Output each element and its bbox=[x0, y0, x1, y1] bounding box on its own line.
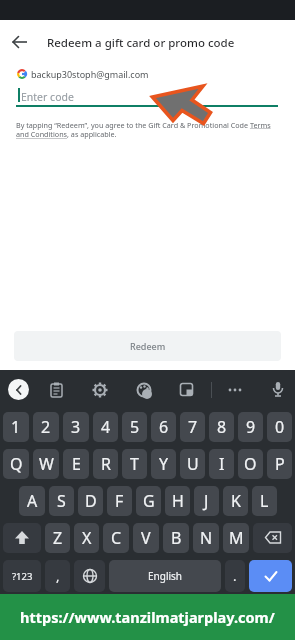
button[interactable]: X bbox=[74, 523, 99, 553]
button[interactable]: W bbox=[33, 449, 59, 479]
button[interactable]: ?123 bbox=[3, 560, 41, 592]
staticText: L bbox=[260, 490, 269, 512]
button[interactable] bbox=[16, 65, 156, 82]
button[interactable]: 8 bbox=[209, 412, 234, 442]
button[interactable] bbox=[267, 379, 289, 401]
button[interactable] bbox=[46, 379, 68, 401]
staticText: K bbox=[231, 490, 241, 512]
staticText: J bbox=[204, 490, 209, 512]
staticText: 7 bbox=[188, 416, 198, 438]
staticText: P bbox=[275, 453, 285, 475]
staticText: 4 bbox=[101, 416, 111, 438]
staticText: English bbox=[148, 569, 183, 583]
button[interactable]: By tapping “Redeem”, you agree to the Gi… bbox=[16, 120, 282, 140]
button[interactable]: 9 bbox=[238, 412, 263, 442]
staticText: X bbox=[82, 527, 92, 549]
staticText: 8 bbox=[217, 416, 227, 438]
button[interactable]: E bbox=[63, 449, 89, 479]
button[interactable]: N bbox=[193, 523, 219, 553]
button[interactable]: C bbox=[103, 523, 129, 553]
staticText: T bbox=[130, 453, 139, 475]
staticText: 2 bbox=[41, 416, 51, 438]
staticText: ?123 bbox=[12, 570, 33, 583]
staticText: , bbox=[56, 567, 60, 585]
button[interactable]: B bbox=[163, 523, 189, 553]
button[interactable]: U bbox=[180, 449, 205, 479]
staticText: 0 bbox=[275, 416, 285, 438]
button[interactable]: 4 bbox=[93, 412, 118, 442]
staticText: M bbox=[229, 527, 244, 549]
staticText: O bbox=[244, 453, 257, 475]
button[interactable]: V bbox=[133, 523, 159, 553]
staticText: Redeem a gift card or promo code bbox=[47, 35, 235, 51]
staticText: C bbox=[111, 527, 122, 549]
staticText: Redeem bbox=[130, 340, 166, 352]
staticText: Q bbox=[10, 453, 23, 475]
button[interactable]: 7 bbox=[180, 412, 205, 442]
button[interactable] bbox=[176, 379, 198, 401]
staticText: . bbox=[233, 567, 237, 585]
staticText: I bbox=[219, 453, 225, 475]
staticText: backup30stoph@gmail.com bbox=[31, 68, 149, 80]
button[interactable]: https://www.tanzilmatjarplay.com/ bbox=[0, 594, 295, 640]
button[interactable]: 1 bbox=[3, 412, 29, 442]
staticText: A bbox=[27, 490, 38, 512]
button[interactable]: Q bbox=[3, 449, 29, 479]
staticText: U bbox=[187, 453, 199, 475]
staticText: S bbox=[57, 490, 66, 512]
button[interactable] bbox=[249, 560, 292, 592]
button[interactable]: Z bbox=[45, 523, 70, 553]
staticText: 1 bbox=[11, 416, 21, 438]
staticText: V bbox=[141, 527, 151, 549]
button[interactable]: D bbox=[78, 486, 103, 516]
button[interactable]: 3 bbox=[63, 412, 89, 442]
button[interactable]: 0 bbox=[267, 412, 292, 442]
staticText: Enter code bbox=[21, 90, 74, 104]
button[interactable]: Redeem bbox=[14, 331, 281, 361]
button[interactable] bbox=[74, 560, 105, 592]
button[interactable]: K bbox=[223, 486, 248, 516]
button[interactable] bbox=[16, 83, 278, 109]
button[interactable]: . bbox=[225, 560, 245, 592]
button[interactable] bbox=[8, 379, 29, 400]
staticText: https://www.tanzilmatjarplay.com/ bbox=[20, 607, 275, 627]
staticText: N bbox=[200, 527, 213, 549]
button[interactable]: English bbox=[109, 560, 221, 592]
button[interactable] bbox=[253, 523, 292, 553]
button[interactable]: 6 bbox=[151, 412, 176, 442]
staticText: D bbox=[85, 490, 97, 512]
button[interactable]: A bbox=[19, 486, 45, 516]
staticText: H bbox=[172, 490, 184, 512]
button[interactable]: , bbox=[45, 560, 70, 592]
button[interactable]: M bbox=[223, 523, 249, 553]
staticText: W bbox=[39, 453, 54, 475]
button[interactable]: Y bbox=[151, 449, 176, 479]
staticText: E bbox=[72, 453, 81, 475]
staticText: 9 bbox=[246, 416, 256, 438]
button[interactable]: F bbox=[107, 486, 132, 516]
button[interactable] bbox=[133, 379, 155, 401]
button[interactable]: T bbox=[122, 449, 147, 479]
staticText: F bbox=[115, 490, 124, 512]
staticText: Y bbox=[159, 453, 169, 475]
button[interactable]: S bbox=[49, 486, 74, 516]
button[interactable]: 5 bbox=[122, 412, 147, 442]
button[interactable] bbox=[6, 28, 34, 56]
button[interactable] bbox=[3, 523, 41, 553]
button[interactable]: 2 bbox=[33, 412, 59, 442]
staticText: 6 bbox=[159, 416, 169, 438]
button[interactable]: G bbox=[136, 486, 161, 516]
button[interactable] bbox=[89, 379, 111, 401]
staticText: G bbox=[143, 490, 155, 512]
button[interactable]: I bbox=[209, 449, 234, 479]
button[interactable] bbox=[224, 379, 246, 401]
button[interactable]: P bbox=[267, 449, 292, 479]
staticText: 3 bbox=[71, 416, 81, 438]
button[interactable]: J bbox=[194, 486, 219, 516]
button[interactable]: H bbox=[165, 486, 190, 516]
button[interactable]: R bbox=[93, 449, 118, 479]
button[interactable]: L bbox=[252, 486, 277, 516]
button[interactable]: O bbox=[238, 449, 263, 479]
staticText: B bbox=[171, 527, 182, 549]
staticText: 5 bbox=[130, 416, 140, 438]
